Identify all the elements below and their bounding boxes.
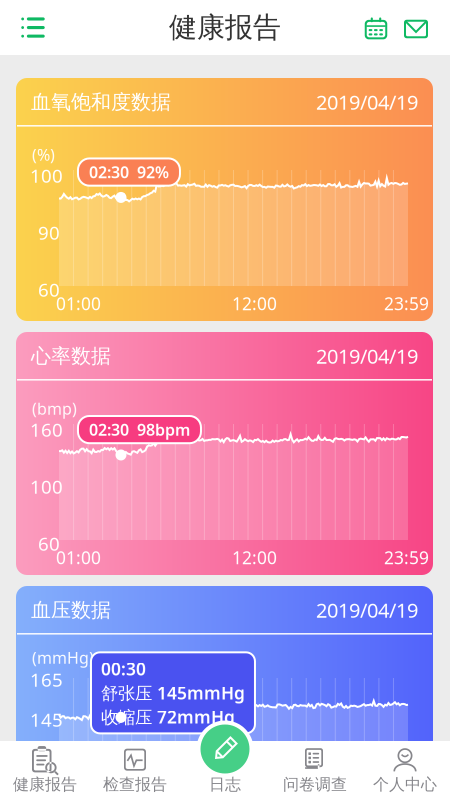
staticText: 165 [30,667,63,692]
staticText: 145 [30,707,63,732]
staticText: (mmHg) [32,647,94,668]
staticText: 02:30 92% [89,161,169,183]
staticText: 00:30 [101,657,146,680]
staticText: 日志 [209,775,241,794]
button[interactable]: 个人中心 [360,741,450,800]
staticText: 100 [30,163,63,188]
button[interactable]: 检查报告 [90,741,180,800]
button[interactable]: 日志 [180,741,270,800]
staticText: 02:30 98bpm [89,419,190,440]
staticText: 健康报告 [169,10,281,45]
staticText: (%) [32,144,55,165]
button[interactable]: Menu [11,5,55,49]
staticText: 2019/04/19 [316,597,418,623]
staticText: 12:00 [232,546,277,569]
staticText: 23:59 [384,546,429,569]
staticText: 160 [30,417,63,442]
staticText: 检查报告 [103,775,167,794]
button[interactable]: 日志 [195,719,255,779]
button[interactable]: 健康报告 [0,741,90,800]
staticText: 舒张压 145mmHg [101,681,245,704]
staticText: 个人中心 [373,775,437,794]
staticText: 12:00 [232,292,277,315]
staticText: 收缩压 72mmHg [101,705,235,728]
staticText: 60 [38,531,60,556]
staticText: 血压数据 [31,598,111,622]
staticText: (bmp) [32,398,77,419]
staticText: 2019/04/19 [316,343,418,369]
staticText: 01:00 [56,292,101,315]
staticText: 问卷调查 [283,775,347,794]
button[interactable]: 问卷调查 [270,741,360,800]
staticText: 血氧饱和度数据 [31,90,171,114]
staticText: 100 [30,474,63,499]
button[interactable]: Messages [396,7,436,51]
staticText: 健康报告 [13,775,77,794]
staticText: 01:00 [56,546,101,569]
staticText: 心率数据 [31,344,111,368]
button[interactable]: Calendar [356,6,396,50]
staticText: 60 [38,277,60,302]
staticText: 90 [38,220,60,245]
staticText: 2019/04/19 [316,89,418,115]
staticText: 23:59 [384,292,429,315]
